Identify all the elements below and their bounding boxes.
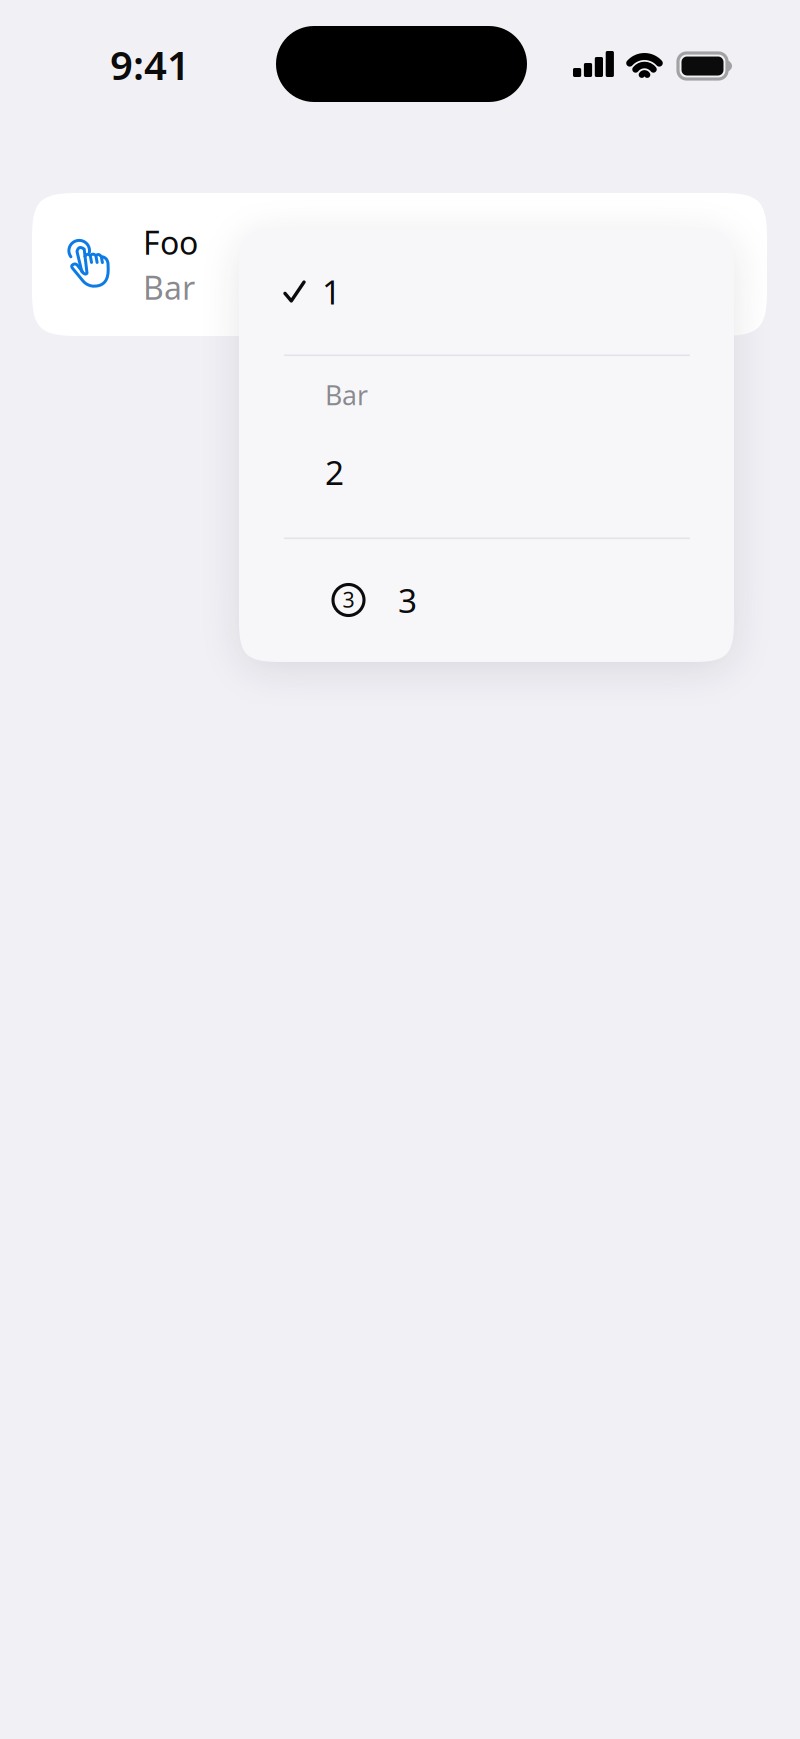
staticText: 2	[325, 450, 344, 494]
button[interactable]: 2	[239, 433, 734, 511]
staticText: Foo	[143, 221, 198, 263]
button[interactable]: 3	[239, 538, 734, 662]
staticText: Bar	[143, 266, 195, 308]
staticText: 9:41	[110, 38, 190, 91]
staticText: 1	[322, 269, 341, 314]
button[interactable]: 1	[239, 228, 734, 355]
button[interactable]: Foo	[32, 193, 767, 336]
staticText: Bar	[325, 377, 368, 413]
staticText: 3	[398, 578, 417, 622]
staticText: 3	[342, 585, 354, 614]
